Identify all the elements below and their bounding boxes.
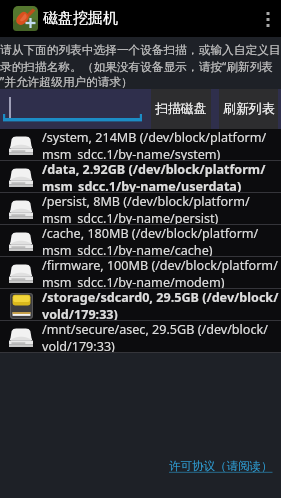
staticText: 录的扫描名称。（如果没有设备显示，请按“刷新列表 <box>0 58 274 73</box>
staticText: 许可协议（请阅读） <box>169 459 273 473</box>
staticText: /firmware, 100MB (/dev/block/platform/ <box>42 257 278 274</box>
staticText: msm_sdcc.1/by-name/modem) <box>42 274 225 289</box>
staticText: 扫描磁盘 <box>155 101 207 117</box>
staticText: /mnt/secure/asec, 29.5GB (/dev/block/ <box>42 321 268 338</box>
staticText: /persist, 8MB (/dev/block/platform/ <box>42 193 250 210</box>
staticText: 请从下面的列表中选择一个设备扫描，或输入自定义目 <box>0 43 281 58</box>
button[interactable]: More options <box>255 0 281 37</box>
staticText: msm_sdcc.1/by-name/userdata) <box>42 178 242 193</box>
staticText: vold/179:33) <box>42 338 115 353</box>
button[interactable]: /cache, 180MB (/dev/block/platform/ <box>0 225 281 257</box>
button[interactable]: /firmware, 100MB (/dev/block/platform/ <box>0 257 281 289</box>
staticText: /system, 214MB (/dev/block/platform/ <box>42 129 267 146</box>
staticText: vold/179:33) <box>42 306 118 321</box>
staticText: 磁盘挖掘机 <box>43 9 118 28</box>
staticText: ”并允许超级用户的请求） <box>0 73 133 88</box>
staticText: 刷新列表 <box>223 101 275 117</box>
staticText: msm_sdcc.1/by-name/persist) <box>42 210 219 225</box>
staticText: /cache, 180MB (/dev/block/platform/ <box>42 225 259 242</box>
button[interactable]: /persist, 8MB (/dev/block/platform/ <box>0 193 281 225</box>
staticText: msm_sdcc.1/by-name/system) <box>42 146 221 161</box>
button[interactable]: 刷新列表 <box>219 89 278 129</box>
button[interactable]: /storage/sdcard0, 29.5GB (/dev/block/ <box>0 289 281 321</box>
staticText: /storage/sdcard0, 29.5GB (/dev/block/ <box>42 289 279 306</box>
button[interactable]: 许可协议（请阅读） <box>169 459 273 473</box>
button[interactable]: 扫描磁盘 <box>151 89 211 129</box>
button[interactable]: /data, 2.92GB (/dev/block/platform/ <box>0 161 281 193</box>
button[interactable]: /system, 214MB (/dev/block/platform/ <box>0 129 281 161</box>
staticText: /data, 2.92GB (/dev/block/platform/ <box>42 161 266 178</box>
staticText: msm_sdcc.1/by-name/cache) <box>42 242 213 257</box>
button[interactable]: /mnt/secure/asec, 29.5GB (/dev/block/ <box>0 321 281 353</box>
